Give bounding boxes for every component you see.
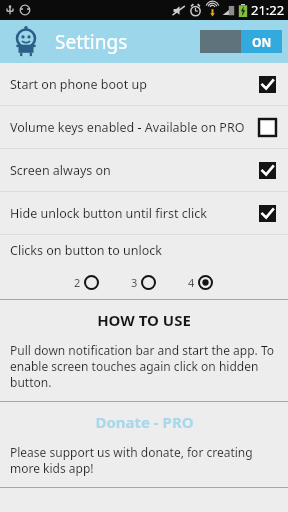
- staticText: 3: [131, 275, 138, 290]
- staticText: Screen always on: [10, 162, 259, 179]
- staticText: Pull down notification bar and start the…: [10, 342, 278, 390]
- button[interactable]: Hide unlock button until first click: [0, 192, 288, 234]
- button[interactable]: 4: [186, 272, 215, 293]
- staticText: HOW TO USE: [97, 310, 191, 330]
- button[interactable]: 3: [129, 272, 158, 293]
- staticText: ON: [252, 34, 272, 50]
- button[interactable]: Donate - PRO: [10, 412, 278, 432]
- button[interactable]: Start on phone boot up: [0, 63, 288, 105]
- staticText: 21:22: [251, 1, 285, 19]
- button[interactable]: Toggle service on or off: [200, 30, 282, 53]
- staticText: Please support us with donate, for creat…: [10, 444, 278, 476]
- staticText: Hide unlock button until first click: [10, 205, 259, 222]
- staticText: Settings: [55, 29, 128, 55]
- staticText: Start on phone boot up: [10, 76, 259, 93]
- staticText: Clicks on button to unlock: [10, 242, 163, 259]
- button[interactable]: 2: [72, 272, 101, 293]
- staticText: Donate - PRO: [95, 412, 194, 432]
- staticText: 4: [188, 275, 195, 290]
- staticText: 2: [74, 275, 81, 290]
- button[interactable]: Screen always on: [0, 149, 288, 191]
- button[interactable]: Volume keys enabled - Available on PRO: [0, 106, 288, 148]
- staticText: Volume keys enabled - Available on PRO: [10, 119, 259, 136]
